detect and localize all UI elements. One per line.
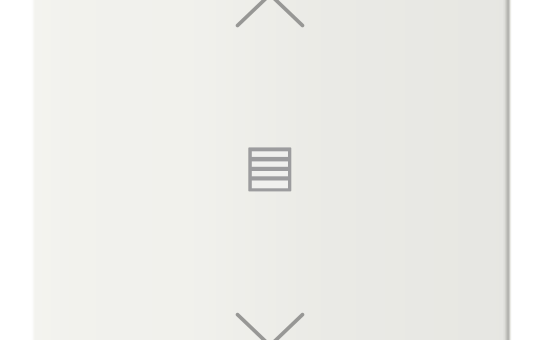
button[interactable]: Raise blinds [237,0,302,25]
button[interactable]: Lower blinds [237,315,302,340]
button[interactable]: Blinds [248,147,291,191]
